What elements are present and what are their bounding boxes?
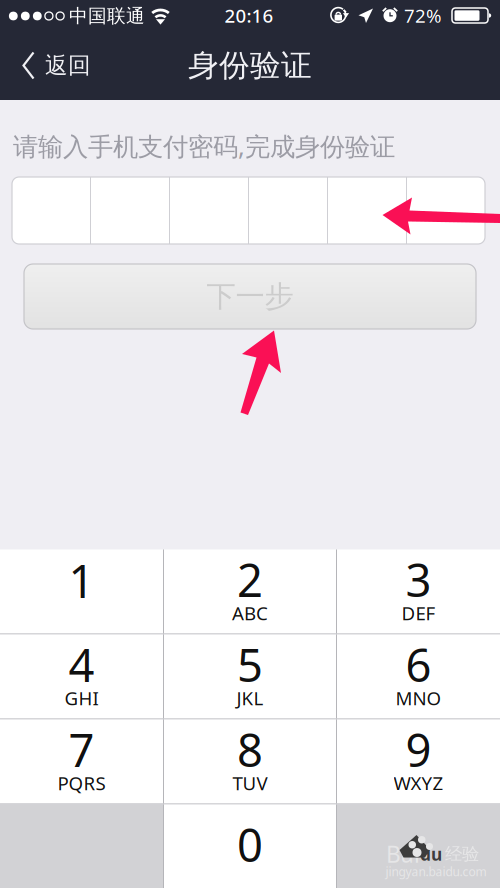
staticText: 9 bbox=[405, 719, 431, 780]
staticText: 身份验证 bbox=[188, 47, 312, 84]
staticText: DEF bbox=[401, 601, 435, 625]
button[interactable]: 8 bbox=[164, 719, 336, 803]
button[interactable]: 3 bbox=[337, 549, 500, 633]
staticText: Bai bbox=[386, 839, 420, 869]
button[interactable]: 下一步 bbox=[24, 264, 476, 329]
button[interactable]: 2 bbox=[164, 549, 336, 633]
staticText: 7 bbox=[68, 719, 94, 780]
staticText: 0 bbox=[237, 814, 263, 875]
staticText: 20:16 bbox=[224, 3, 273, 28]
button[interactable]: 0 bbox=[164, 804, 336, 888]
staticText: 8 bbox=[237, 719, 263, 780]
staticText: 72% bbox=[404, 3, 442, 28]
button[interactable]: 1 bbox=[0, 549, 163, 633]
button[interactable]: 7 bbox=[0, 719, 163, 803]
staticText: 1 bbox=[68, 550, 94, 611]
staticText: 5 bbox=[237, 634, 263, 695]
staticText: 3 bbox=[405, 549, 431, 610]
staticText: WXYZ bbox=[393, 771, 443, 795]
button[interactable]: 9 bbox=[337, 719, 500, 803]
staticText: PQRS bbox=[57, 771, 105, 795]
staticText: 请输入手机支付密码,完成身份验证 bbox=[13, 129, 395, 163]
staticText: jingyan.baidu.com bbox=[385, 863, 486, 879]
staticText: 4 bbox=[68, 634, 94, 695]
button[interactable]: 4 bbox=[0, 634, 163, 718]
staticText: GHI bbox=[64, 686, 98, 710]
staticText: 下一步 bbox=[206, 278, 293, 314]
staticText: du bbox=[420, 842, 442, 865]
staticText: MNO bbox=[395, 686, 441, 710]
staticText: 经验 bbox=[445, 843, 479, 865]
staticText: ABC bbox=[232, 601, 268, 625]
staticText: 返回 bbox=[45, 52, 91, 79]
button[interactable]: 5 bbox=[164, 634, 336, 718]
staticText: TUV bbox=[232, 771, 267, 795]
staticText: 6 bbox=[405, 634, 431, 695]
staticText: 2 bbox=[237, 549, 263, 610]
staticText: 中国联通 bbox=[69, 4, 145, 27]
button[interactable]: 6 bbox=[337, 634, 500, 718]
button[interactable]: 返回 bbox=[0, 31, 113, 100]
staticText: JKL bbox=[236, 686, 263, 710]
